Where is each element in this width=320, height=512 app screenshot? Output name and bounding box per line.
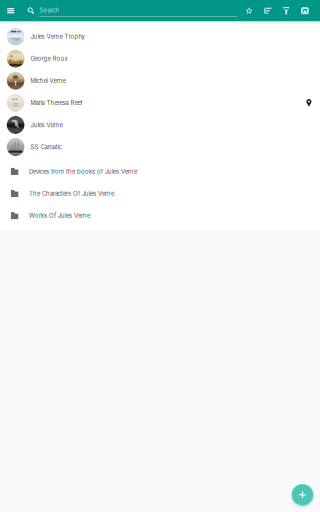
button[interactable]: Devices from the books of Jules Verne <box>0 160 320 182</box>
staticText: Devices from the books of Jules Verne <box>29 168 137 175</box>
button[interactable]: Filter <box>277 0 296 21</box>
button[interactable]: Search <box>21 0 40 21</box>
button[interactable]: Favourites <box>240 0 258 21</box>
staticText: George Roux <box>31 55 68 62</box>
button[interactable]: Maria Theresa Reef <box>0 92 320 114</box>
button[interactable]: The Characters Of Jules Verne <box>0 182 320 205</box>
staticText: SS Camatic <box>31 143 62 151</box>
staticText: Works Of Jules Verne <box>29 212 90 219</box>
button[interactable]: Add <box>289 482 315 508</box>
staticText: Jules Verne Trophy <box>31 33 85 40</box>
staticText: The Characters Of Jules Verne <box>29 190 114 197</box>
button[interactable]: Jules Verne Trophy <box>0 25 320 48</box>
button[interactable]: Sort <box>258 0 277 21</box>
staticText: Jules Verne <box>31 121 63 129</box>
staticText: Maria Theresa Reef <box>31 99 83 106</box>
staticText: Michel Verne <box>31 77 66 84</box>
staticText: Search <box>39 7 59 14</box>
button[interactable]: Michel Verne <box>0 70 320 92</box>
button[interactable]: Jules Verne <box>0 114 320 136</box>
button[interactable]: George Roux <box>0 48 320 70</box>
button[interactable]: View mode <box>296 0 314 21</box>
button[interactable]: SS Camatic <box>0 136 320 158</box>
button[interactable]: Menu <box>0 0 21 21</box>
button[interactable]: Works Of Jules Verne <box>0 205 320 227</box>
